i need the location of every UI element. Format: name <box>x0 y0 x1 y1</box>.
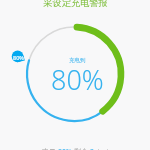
staticText: 采设定充电警报 <box>43 0 108 9</box>
button[interactable]: 电量 <box>42 147 109 150</box>
staticText: 80% <box>58 147 74 150</box>
staticText: 剩余 <box>74 147 90 150</box>
staticText: 小时 <box>95 148 109 150</box>
staticText: 2 <box>90 147 95 150</box>
staticText: 充电到 <box>69 57 86 64</box>
button[interactable]: Charge limit 80 percent <box>11 50 25 64</box>
staticText: 80% <box>51 61 104 98</box>
staticText: 80% <box>13 54 24 61</box>
staticText: 电量 <box>42 147 58 150</box>
